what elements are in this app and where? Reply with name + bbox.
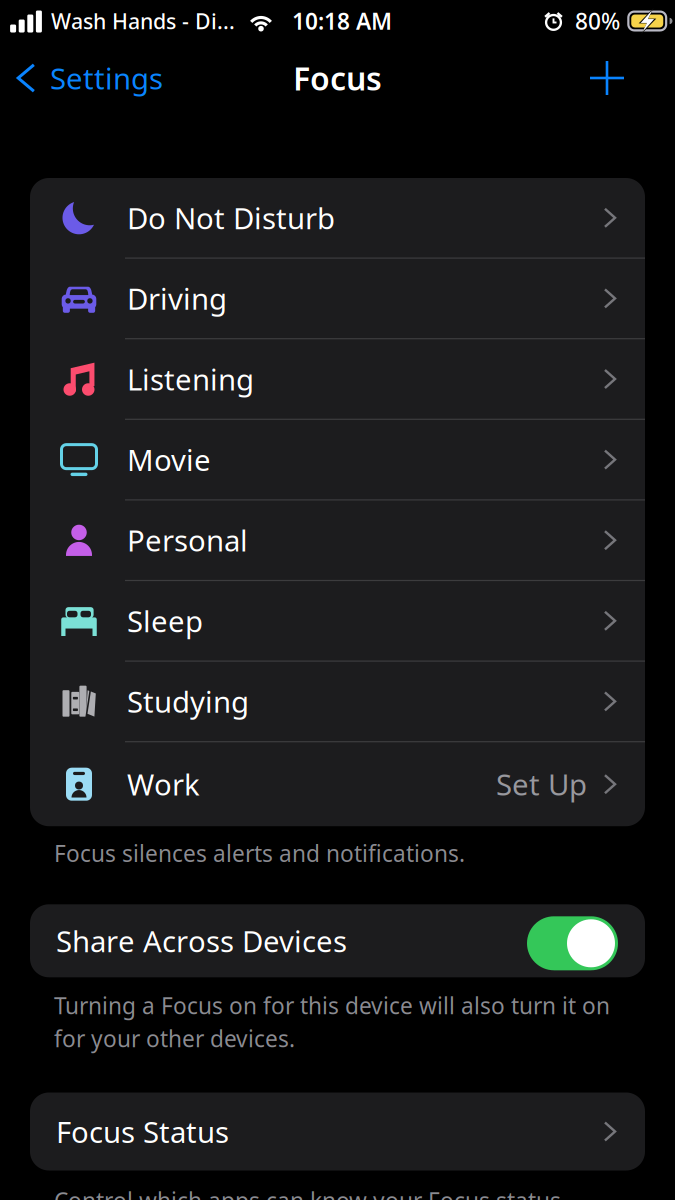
- staticText: Personal: [127, 521, 248, 560]
- button[interactable]: Listening: [30, 339, 645, 420]
- staticText: Share Across Devices: [56, 921, 347, 960]
- button[interactable]: Personal: [30, 500, 645, 581]
- staticText: Turning a Focus on for this device will …: [54, 990, 610, 1020]
- button[interactable]: Share Across Devices: [30, 904, 645, 977]
- staticText: Control which apps can know your Focus s…: [54, 1185, 567, 1200]
- staticText: Set Up: [496, 765, 587, 804]
- staticText: Focus: [293, 57, 382, 99]
- button[interactable]: Movie: [30, 420, 645, 500]
- staticText: Focus silences alerts and notifications.: [54, 838, 465, 868]
- staticText: Sleep: [127, 601, 203, 640]
- staticText: 10:18 AM: [292, 6, 392, 36]
- staticText: Movie: [127, 440, 211, 479]
- button[interactable]: Driving: [30, 259, 645, 339]
- staticText: Do Not Disturb: [127, 198, 335, 237]
- button[interactable]: Do Not Disturb: [30, 178, 645, 259]
- staticText: 80%: [575, 6, 620, 36]
- staticText: Wash Hands - Di...: [51, 7, 235, 35]
- button[interactable]: Studying: [30, 662, 645, 742]
- staticText: Focus Status: [56, 1112, 229, 1151]
- staticText: Driving: [127, 279, 227, 318]
- staticText: Listening: [127, 359, 254, 398]
- button[interactable]: Settings: [0, 50, 163, 106]
- button[interactable]: Work: [30, 742, 645, 826]
- staticText: Studying: [127, 682, 249, 721]
- button[interactable]: Sleep: [30, 581, 645, 662]
- button[interactable]: Add Focus: [578, 49, 636, 107]
- staticText: for your other devices.: [54, 1023, 295, 1053]
- button[interactable]: Focus Status: [30, 1092, 645, 1170]
- staticText: Work: [127, 765, 200, 804]
- staticText: Settings: [50, 58, 163, 97]
